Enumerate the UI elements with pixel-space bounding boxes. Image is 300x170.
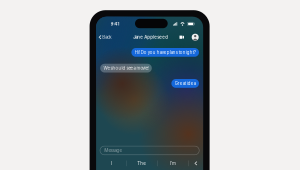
button[interactable]: Contact info bbox=[192, 34, 199, 41]
staticText: I bbox=[111, 161, 112, 166]
button[interactable]: Dismiss suggestions bbox=[189, 158, 203, 169]
staticText: We should see a movie! bbox=[103, 66, 148, 71]
staticText: Back bbox=[102, 35, 111, 40]
staticText: The bbox=[137, 161, 146, 166]
button[interactable]: iMessage bbox=[100, 146, 199, 155]
button[interactable]: I'm bbox=[158, 158, 188, 169]
staticText: iMessage bbox=[104, 148, 122, 153]
button[interactable]: Back bbox=[98, 32, 112, 42]
staticText: I'm bbox=[170, 161, 176, 166]
button[interactable]: The bbox=[126, 158, 157, 169]
staticText: Hi! Do you have plans tonight? bbox=[135, 50, 196, 55]
staticText: 9:41 bbox=[110, 21, 119, 27]
button[interactable]: I bbox=[96, 158, 126, 169]
staticText: Great idea bbox=[175, 81, 196, 86]
staticText: Jane Appleseed bbox=[133, 35, 168, 40]
button[interactable]: FaceTime bbox=[179, 35, 184, 39]
